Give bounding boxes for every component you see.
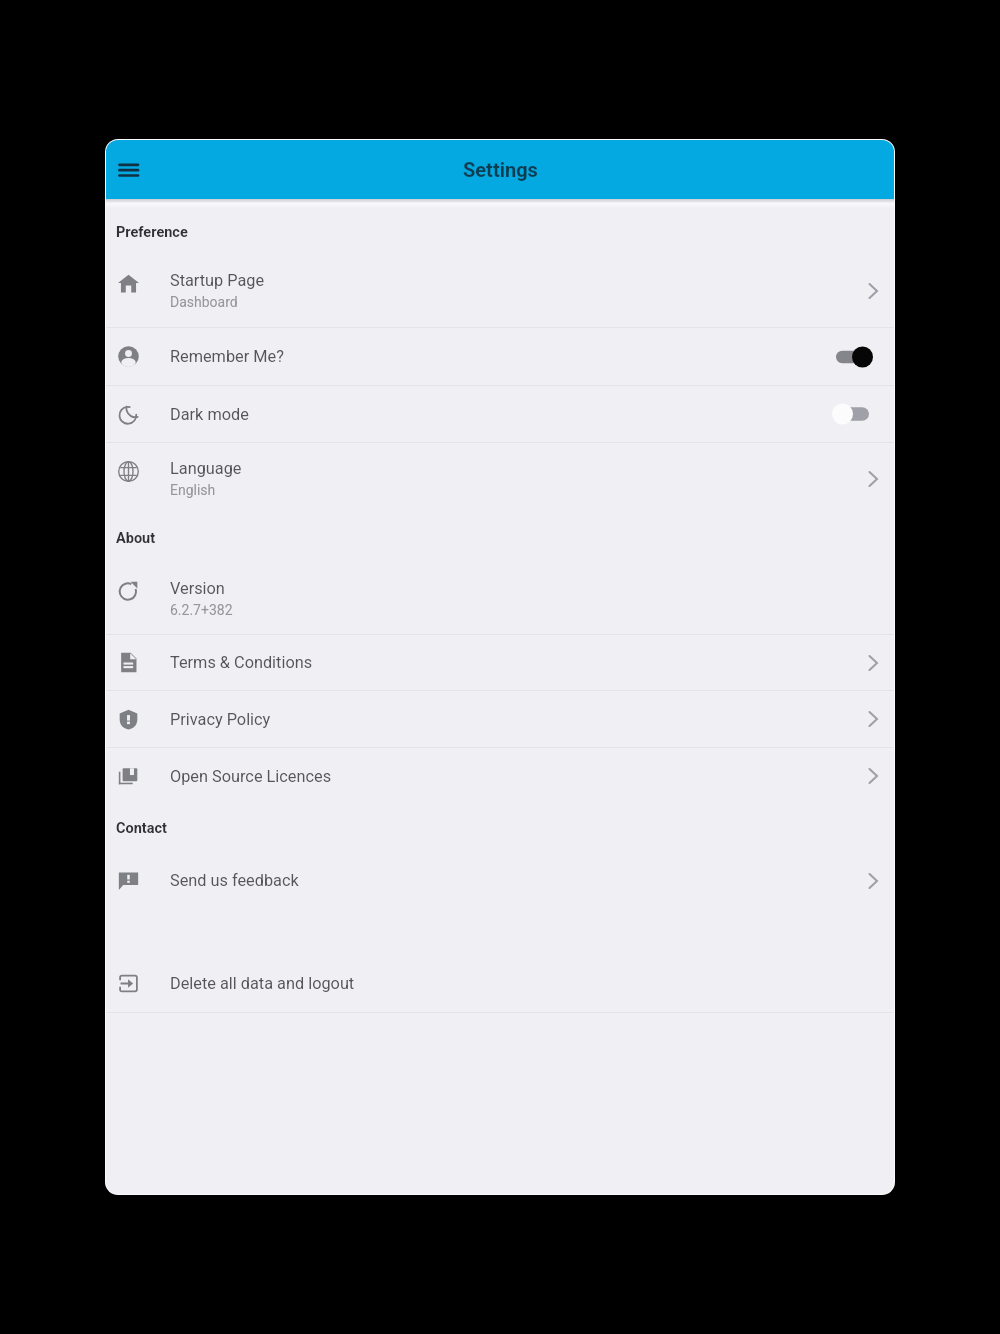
button[interactable]: Language: [106, 443, 894, 514]
button[interactable]: Send us feedback: [106, 852, 894, 909]
button[interactable]: Terms & Conditions: [106, 635, 894, 690]
staticText: Dark mode: [170, 405, 249, 424]
staticText: Language: [170, 459, 242, 478]
button[interactable]: Remember Me?, on: [827, 344, 894, 370]
staticText: Open Source Licences: [170, 767, 332, 786]
button[interactable]: Open navigation menu: [106, 140, 154, 199]
staticText: Delete all data and logout: [170, 974, 355, 993]
staticText: English: [170, 482, 216, 498]
staticText: Settings: [463, 158, 538, 181]
button[interactable]: Delete all data and logout: [106, 955, 894, 1012]
staticText: Privacy Policy: [170, 710, 271, 729]
staticText: Contact: [116, 820, 167, 837]
staticText: 6.2.7+382: [170, 602, 233, 618]
staticText: Startup Page: [170, 271, 265, 290]
button[interactable]: Privacy Policy: [106, 691, 894, 747]
button[interactable]: Open Source Licences: [106, 748, 894, 804]
button[interactable]: Dark mode: [106, 386, 894, 442]
button[interactable]: Remember Me?: [106, 328, 894, 385]
staticText: Dashboard: [170, 294, 238, 310]
button[interactable]: Dark mode, off: [827, 401, 894, 427]
staticText: Terms & Conditions: [170, 653, 313, 672]
staticText: Send us feedback: [170, 871, 299, 890]
staticText: Remember Me?: [170, 347, 284, 366]
staticText: About: [116, 530, 156, 547]
button[interactable]: Version: [106, 562, 894, 634]
staticText: Preference: [116, 224, 188, 241]
staticText: Version: [170, 579, 225, 598]
button[interactable]: Startup Page: [106, 254, 894, 327]
